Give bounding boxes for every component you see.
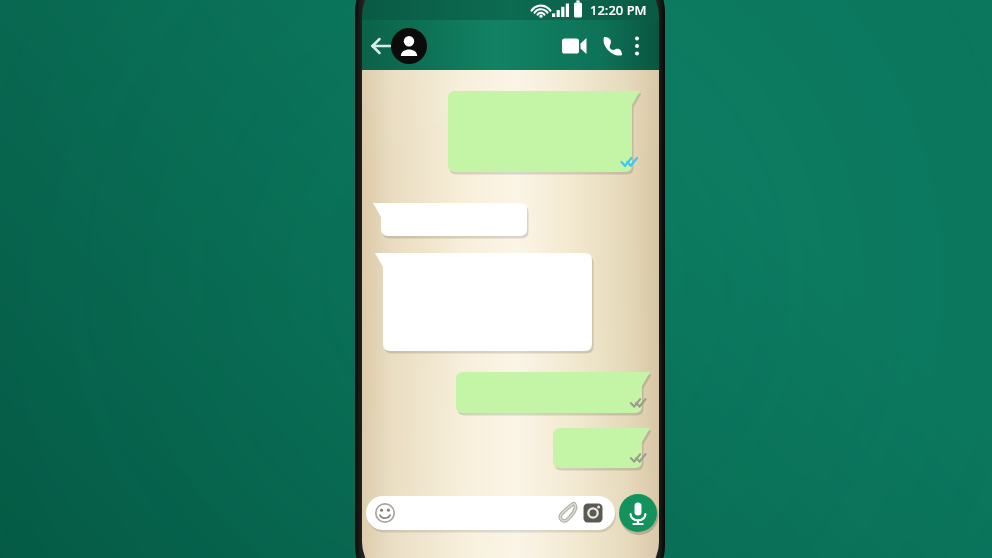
button[interactable]: Emoji <box>367 496 401 530</box>
button[interactable]: Back <box>0 0 992 558</box>
button[interactable]: More options <box>637 28 665 64</box>
button[interactable]: Back <box>363 28 399 64</box>
button[interactable]: Camera <box>587 496 615 530</box>
button[interactable]: Video call <box>562 28 598 64</box>
button[interactable]: Attach <box>559 496 587 530</box>
button[interactable]: Voice call <box>601 28 637 64</box>
button[interactable]: Record voice message <box>619 494 659 534</box>
button[interactable]: Contact profile <box>390 28 428 66</box>
